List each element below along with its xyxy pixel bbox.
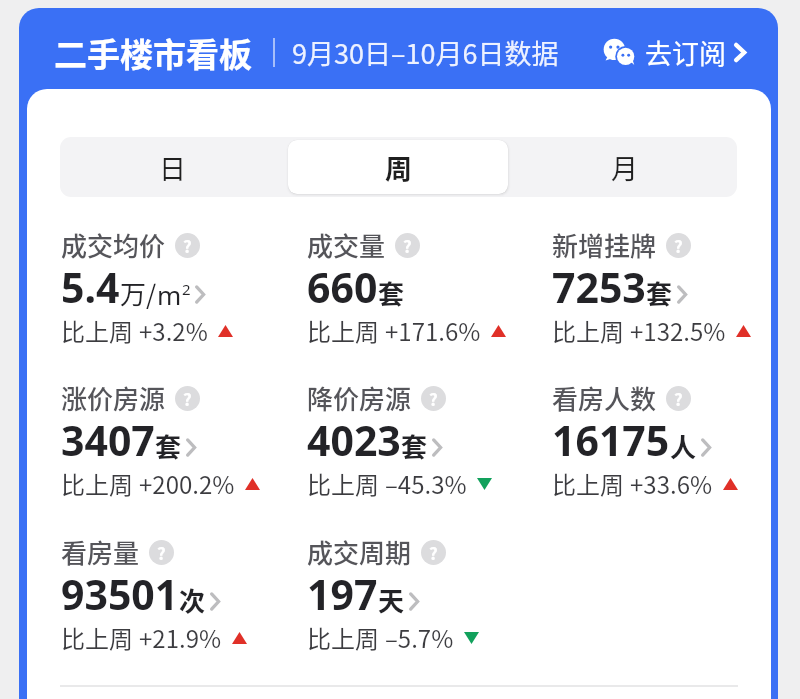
- staticText: 7253: [552, 259, 646, 315]
- button[interactable]: 成交均价: [61, 226, 301, 346]
- staticText: 4023: [307, 412, 401, 468]
- staticText: 人: [670, 427, 697, 465]
- staticText: ?: [674, 386, 683, 411]
- staticText: ?: [429, 386, 438, 411]
- button[interactable]: 日: [63, 140, 282, 194]
- staticText: 涨价房源: [61, 379, 166, 417]
- staticText: ?: [403, 233, 412, 258]
- staticText: 看房量: [61, 533, 140, 571]
- staticText: 3407: [61, 412, 155, 468]
- staticText: 16175: [552, 412, 670, 468]
- button[interactable]: 成交量: [307, 226, 547, 346]
- staticText: –5.7%: [385, 620, 454, 655]
- staticText: 二手楼市看板: [54, 29, 252, 77]
- staticText: 套: [155, 427, 182, 465]
- staticText: 93501: [61, 566, 179, 622]
- staticText: +33.6%: [630, 466, 713, 501]
- staticText: ?: [157, 540, 166, 565]
- staticText: 5.4: [61, 259, 120, 315]
- staticText: +3.2%: [139, 313, 208, 348]
- staticText: 2: [182, 279, 191, 299]
- staticText: 197: [307, 566, 378, 622]
- staticText: 比上周: [307, 620, 379, 655]
- button[interactable]: 看房人数: [552, 379, 771, 499]
- staticText: 成交周期: [307, 533, 412, 571]
- button[interactable]: 新增挂牌: [552, 226, 771, 346]
- staticText: 9月30日–10月6日数据: [292, 33, 559, 72]
- staticText: +21.9%: [139, 620, 222, 655]
- staticText: 套: [378, 274, 405, 312]
- staticText: 日: [159, 148, 186, 187]
- staticText: 比上周: [61, 313, 133, 348]
- staticText: ?: [429, 540, 438, 565]
- staticText: 660: [307, 259, 378, 315]
- staticText: +200.2%: [139, 466, 235, 501]
- button[interactable]: 月: [514, 140, 734, 194]
- staticText: 成交量: [307, 226, 386, 264]
- staticText: ?: [183, 233, 192, 258]
- staticText: 比上周: [307, 313, 379, 348]
- staticText: 套: [401, 427, 428, 465]
- staticText: 套: [646, 274, 673, 312]
- staticText: 次: [179, 581, 206, 619]
- staticText: ?: [183, 386, 192, 411]
- staticText: +132.5%: [630, 313, 726, 348]
- staticText: m: [157, 277, 182, 312]
- staticText: 去订阅: [645, 33, 726, 72]
- staticText: ?: [674, 233, 683, 258]
- button[interactable]: 看房量: [61, 533, 301, 653]
- staticText: 比上周: [307, 466, 379, 501]
- staticText: 降价房源: [307, 379, 412, 417]
- button[interactable]: 降价房源: [307, 379, 547, 499]
- staticText: 周: [385, 148, 412, 187]
- staticText: +171.6%: [385, 313, 481, 348]
- staticText: 新增挂牌: [552, 226, 657, 264]
- staticText: 比上周: [552, 466, 624, 501]
- staticText: 比上周: [61, 466, 133, 501]
- button[interactable]: 成交周期: [307, 533, 547, 653]
- button[interactable]: 去订阅: [597, 27, 749, 78]
- staticText: 万/: [120, 274, 157, 312]
- staticText: 成交均价: [61, 226, 166, 264]
- staticText: –45.3%: [385, 466, 467, 501]
- staticText: 比上周: [61, 620, 133, 655]
- staticText: 天: [378, 581, 405, 619]
- button[interactable]: 涨价房源: [61, 379, 301, 499]
- staticText: 看房人数: [552, 379, 657, 417]
- staticText: 月: [611, 148, 638, 187]
- staticText: 比上周: [552, 313, 624, 348]
- button[interactable]: 周: [288, 140, 508, 194]
